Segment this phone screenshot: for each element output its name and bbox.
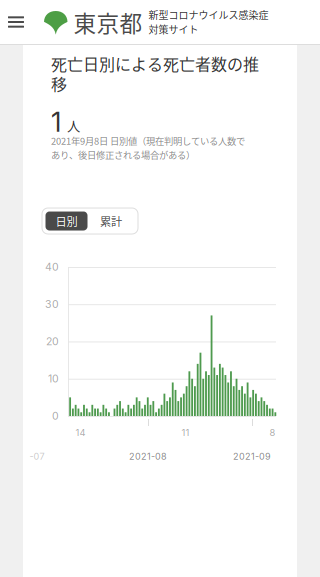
staticText: 1 [51,106,61,138]
button[interactable]: 東京都 [32,0,142,44]
button[interactable]: 日別 [45,211,87,230]
staticText: 0 [52,410,59,422]
button[interactable]: Menu [0,0,32,44]
staticText: 死亡日別による死亡者数の推 [51,52,259,75]
staticText: 2021-08 [129,451,167,462]
staticText: 人 [67,116,80,135]
staticText: 2021-09 [233,451,271,462]
staticText: 40 [45,261,59,273]
staticText: 新型コロナウイルス感染症 対策サイト [148,7,268,36]
staticText: -07 [29,451,44,462]
staticText: 日別 [55,213,77,229]
staticText: 2021年9月8日 日別値（現在判明している人数で [51,134,245,147]
staticText: 8 [269,427,275,438]
staticText: 11 [181,427,189,438]
staticText: 累計 [100,213,122,229]
staticText: 10 [48,372,59,385]
staticText: 30 [45,298,59,311]
staticText: あり、後日修正される場合がある） [51,148,195,161]
staticText: 14 [75,427,85,438]
button[interactable]: 累計 [87,211,134,230]
staticText: 20 [46,335,59,348]
staticText: 移 [51,72,67,95]
staticText: 東京都 [73,6,142,38]
